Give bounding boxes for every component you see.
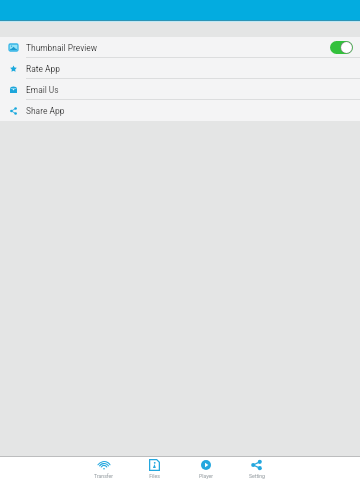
button[interactable]: Toggle thumbnail preview — [330, 41, 353, 54]
button[interactable]: Player — [180, 457, 231, 479]
button[interactable]: Share App — [0, 100, 360, 121]
button[interactable]: Setting — [231, 457, 282, 479]
button[interactable]: Transfer — [78, 457, 129, 479]
staticText: Rate App — [26, 64, 60, 74]
staticText: Player — [199, 473, 213, 479]
staticText: Transfer — [94, 473, 113, 479]
button[interactable]: Thumbnail Preview — [0, 37, 360, 58]
staticText: Thumbnail Preview — [26, 43, 97, 53]
staticText: Share App — [26, 106, 65, 116]
button[interactable]: Email Us — [0, 79, 360, 100]
button[interactable]: Rate App — [0, 58, 360, 79]
staticText: Files — [149, 473, 160, 479]
staticText: Email Us — [26, 85, 59, 95]
button[interactable]: Files — [129, 457, 180, 479]
staticText: Setting — [249, 473, 265, 479]
